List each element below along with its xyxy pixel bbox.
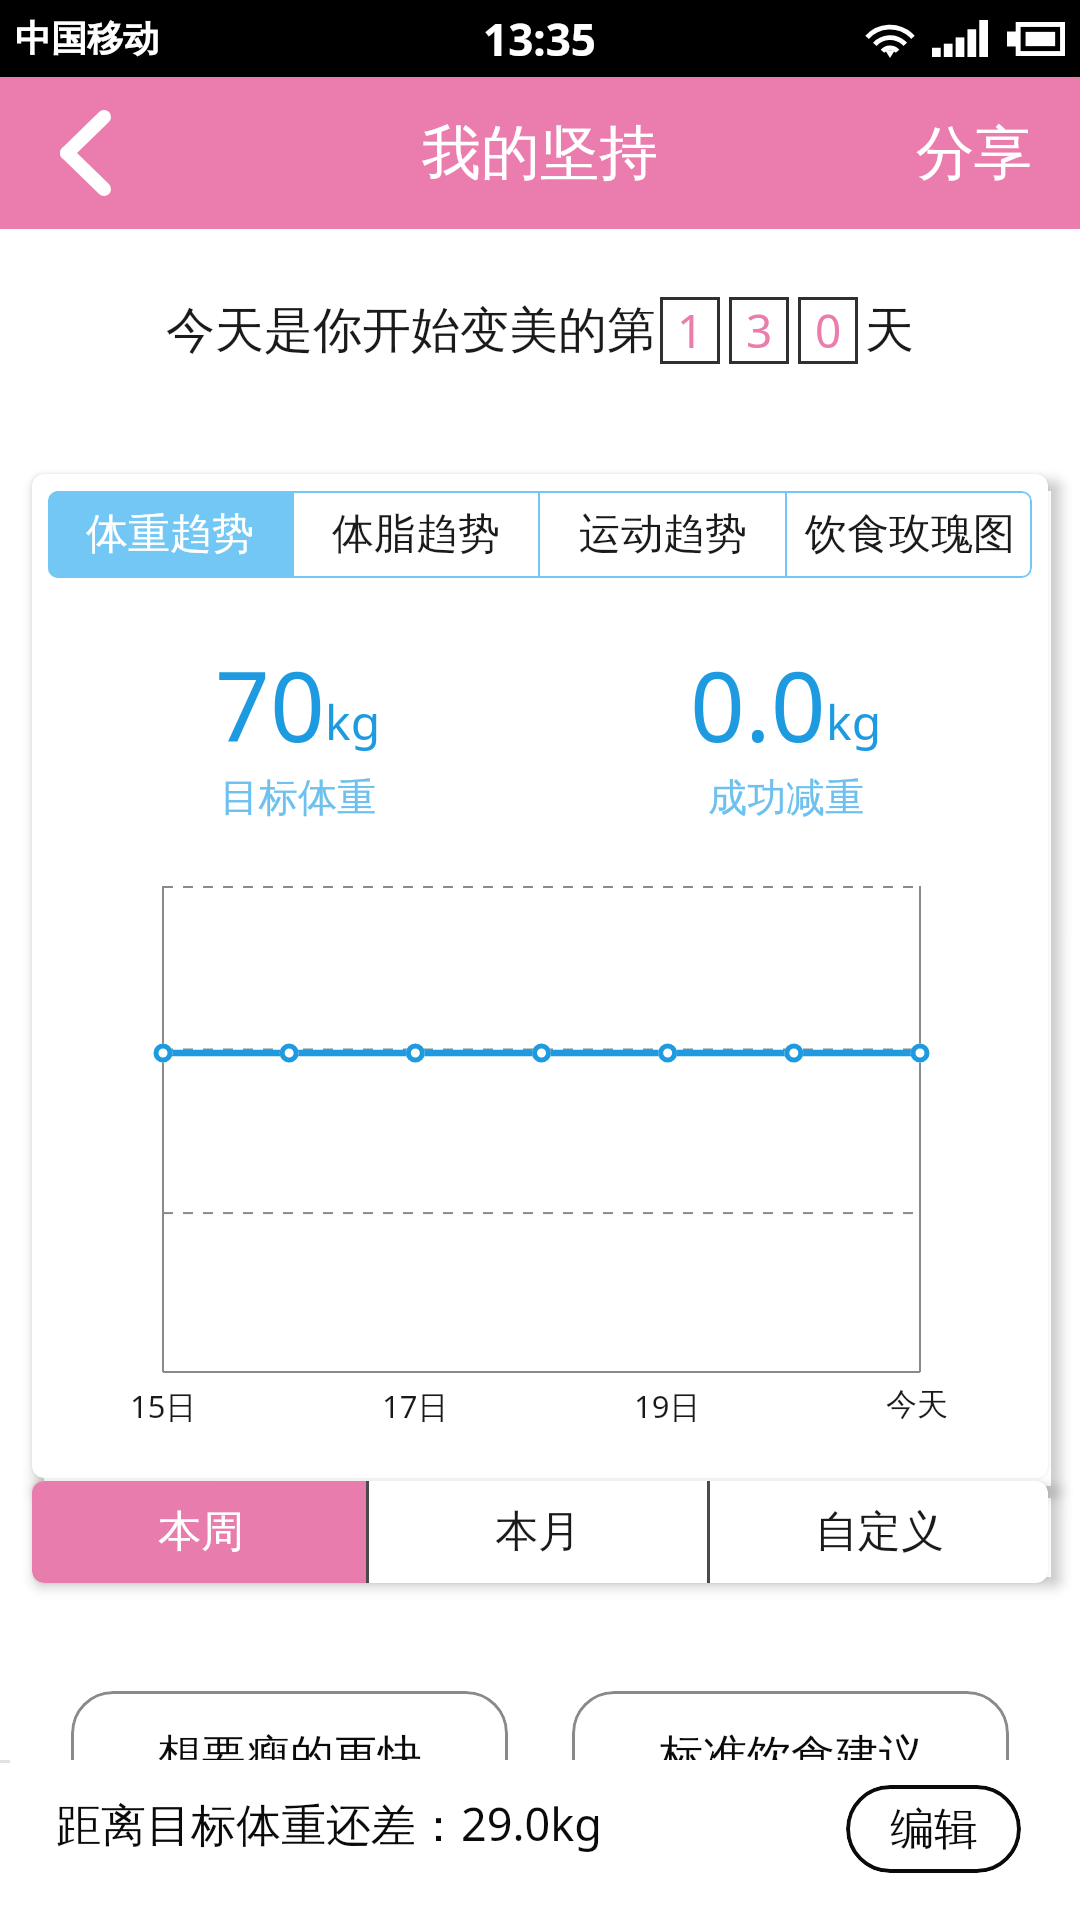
staticText: 想要瘦的更快	[158, 1729, 422, 1784]
button[interactable]: 饮食玫瑰图	[787, 491, 1032, 578]
staticText: 运动趋势	[579, 508, 747, 561]
staticText: kg	[826, 689, 882, 754]
staticText: 今天是你开始变美的第	[166, 300, 656, 362]
staticText: 70	[215, 639, 325, 770]
button[interactable]: 体重趋势	[48, 491, 292, 578]
staticText: 成功减重	[708, 773, 864, 822]
staticText: 17日	[382, 1385, 449, 1427]
button[interactable]: Back	[0, 77, 170, 229]
staticText: 13:35	[483, 9, 597, 69]
staticText: 分享	[916, 117, 1032, 190]
staticText: 本月	[495, 1505, 581, 1559]
button[interactable]: 想要瘦的更快	[71, 1691, 508, 1821]
staticText: 我的坚持	[422, 116, 658, 190]
button[interactable]: 自定义	[710, 1481, 1048, 1583]
button[interactable]: 运动趋势	[540, 491, 785, 578]
staticText: 距离目标体重还差：29.0kg	[56, 1793, 602, 1854]
staticText: 标准饮食建议	[659, 1729, 923, 1784]
staticText: 0	[815, 299, 842, 362]
staticText: 天	[865, 300, 914, 362]
staticText: 目标体重	[220, 773, 376, 822]
button[interactable]: 体脂趋势	[294, 491, 538, 578]
staticText: 19日	[634, 1385, 701, 1427]
button[interactable]: 标准饮食建议	[572, 1691, 1009, 1821]
staticText: 本周	[158, 1505, 244, 1559]
staticText: 0.0	[690, 639, 826, 770]
staticText: 自定义	[815, 1505, 944, 1559]
staticText: 今天	[886, 1385, 948, 1424]
button[interactable]: 分享	[886, 95, 1080, 212]
button[interactable]: 编辑	[846, 1785, 1021, 1873]
staticText: kg	[325, 689, 381, 754]
staticText: 体脂趋势	[332, 508, 500, 561]
staticText: 3	[746, 299, 773, 362]
button[interactable]: 本周	[32, 1481, 369, 1583]
staticText: 饮食玫瑰图	[805, 508, 1015, 561]
staticText: 体重趋势	[86, 508, 254, 561]
button[interactable]: 本月	[369, 1481, 707, 1583]
staticText: 1	[677, 299, 704, 362]
staticText: 中国移动	[15, 16, 159, 61]
staticText: 编辑	[890, 1802, 978, 1857]
staticText: 15日	[130, 1385, 197, 1427]
